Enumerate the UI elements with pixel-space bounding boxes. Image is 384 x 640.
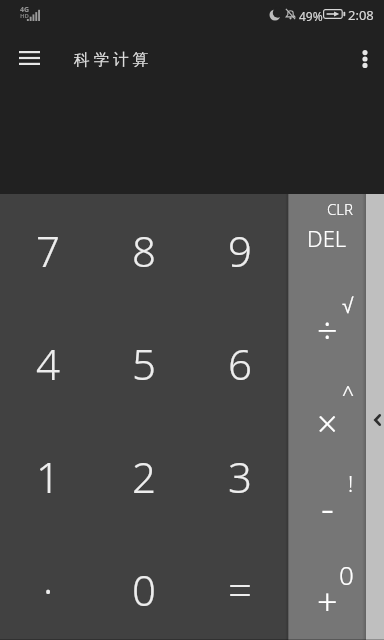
button[interactable]: Show more keys (366, 194, 384, 640)
staticText: · (43, 561, 54, 618)
button[interactable]: 7 (0, 194, 96, 307)
staticText: - (321, 480, 334, 534)
staticText: HD (20, 12, 29, 20)
staticText: CLR (327, 199, 354, 219)
staticText: ÷ (317, 306, 338, 355)
button[interactable]: ^ (288, 376, 366, 466)
button[interactable]: 8 (96, 194, 192, 307)
button[interactable]: 1 (0, 420, 96, 533)
staticText: 49% (299, 8, 323, 24)
staticText: DEL (307, 223, 347, 253)
staticText: = (228, 561, 252, 618)
staticText: 0 (339, 557, 354, 592)
button[interactable]: · (0, 533, 96, 640)
button[interactable]: 6 (192, 307, 288, 420)
button[interactable]: More options (344, 28, 384, 84)
staticText: 科学计算 (74, 50, 152, 70)
button[interactable]: Menu (0, 28, 58, 84)
staticText: 7 (36, 222, 60, 279)
staticText: √ (342, 294, 354, 317)
staticText: ! (348, 470, 354, 499)
button[interactable]: 9 (192, 194, 288, 307)
staticText: 1 (36, 448, 60, 505)
button[interactable]: 4 (0, 307, 96, 420)
staticText: 8 (132, 222, 156, 279)
button[interactable]: 2 (96, 420, 192, 533)
staticText: × (317, 399, 338, 448)
staticText: 0 (132, 561, 156, 618)
staticText: 9 (228, 222, 252, 279)
staticText: ^ (342, 380, 354, 409)
button[interactable]: 5 (96, 307, 192, 420)
staticText: 6 (228, 335, 252, 392)
staticText: + (317, 577, 338, 626)
button[interactable]: 3 (192, 420, 288, 533)
button[interactable]: 0 (96, 533, 192, 640)
staticText: 3 (228, 448, 252, 505)
button[interactable]: = (192, 533, 288, 640)
button[interactable]: ! (288, 466, 366, 556)
staticText: 4G (20, 5, 30, 15)
button[interactable]: √ (288, 285, 366, 376)
staticText: 2 (132, 448, 156, 505)
button[interactable]: 0 (288, 556, 366, 640)
button[interactable]: CLR (288, 194, 366, 285)
staticText: 5 (132, 335, 156, 392)
staticText: 2:08 (348, 6, 374, 24)
staticText: 4 (36, 335, 60, 392)
